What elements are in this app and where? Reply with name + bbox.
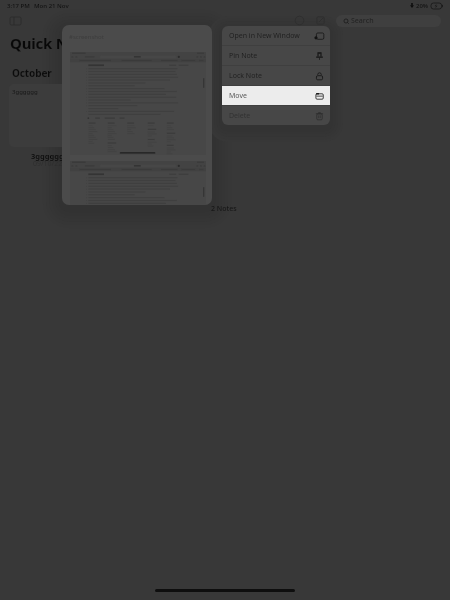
staticText: 3:17 PM (7, 2, 30, 10)
staticText: October (12, 66, 52, 80)
staticText: 09/10/22 (33, 159, 63, 169)
staticText: 3gggggg (12, 88, 38, 96)
button[interactable]: New note (314, 14, 327, 27)
staticText: #screenshot (69, 33, 104, 41)
button[interactable]: Move (229, 86, 324, 105)
button[interactable]: Search (336, 15, 441, 27)
staticText: 3gggggg (31, 151, 64, 161)
staticText: Lock Note (229, 71, 262, 81)
button[interactable]: Pin Note (229, 46, 324, 65)
button[interactable]: Open in New Window (229, 26, 324, 45)
staticText: Move (229, 91, 247, 101)
staticText: Pin Note (229, 51, 258, 61)
button[interactable]: #screenshot (62, 25, 212, 205)
staticText: Delete (229, 111, 251, 121)
staticText: 20% (416, 2, 429, 10)
staticText: Quick Notes (10, 33, 100, 53)
staticText: Open in New Window (229, 31, 300, 41)
staticText: 2 Notes (211, 204, 237, 214)
button[interactable]: 3gggggg (9, 84, 71, 147)
button[interactable]: Share (293, 14, 306, 27)
button[interactable]: Delete (229, 106, 324, 125)
staticText: Mon 21 Nov (34, 2, 69, 10)
other: Toggle sidebar (10, 17, 21, 25)
staticText: Search (351, 16, 374, 26)
button[interactable]: Lock Note (229, 66, 324, 85)
